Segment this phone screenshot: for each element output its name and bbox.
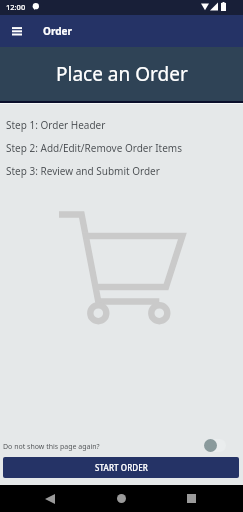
button[interactable]: START ORDER bbox=[3, 457, 239, 478]
button[interactable]: Do not show this page again switch bbox=[200, 435, 234, 455]
button[interactable]: Recent apps bbox=[179, 486, 204, 511]
button[interactable]: Do not show this page again? bbox=[3, 439, 133, 454]
button[interactable]: Step 1: Order Header bbox=[0, 113, 243, 136]
button[interactable]: Open navigation menu bbox=[4, 18, 29, 43]
button[interactable]: Home bbox=[109, 486, 134, 511]
staticText: Do not show this page again? bbox=[3, 442, 100, 452]
staticText: Order bbox=[43, 24, 72, 38]
button[interactable]: Back bbox=[37, 486, 62, 511]
staticText: Place an Order bbox=[56, 61, 188, 87]
staticText: Step 1: Order Header bbox=[6, 118, 106, 132]
staticText: START ORDER bbox=[95, 462, 148, 473]
staticText: Step 3: Review and Submit Order bbox=[6, 164, 160, 178]
button[interactable]: Step 3: Review and Submit Order bbox=[0, 159, 243, 182]
button[interactable]: Step 2: Add/Edit/Remove Order Items bbox=[0, 136, 243, 159]
staticText: 12:00 bbox=[6, 2, 26, 12]
staticText: Step 2: Add/Edit/Remove Order Items bbox=[6, 141, 182, 155]
